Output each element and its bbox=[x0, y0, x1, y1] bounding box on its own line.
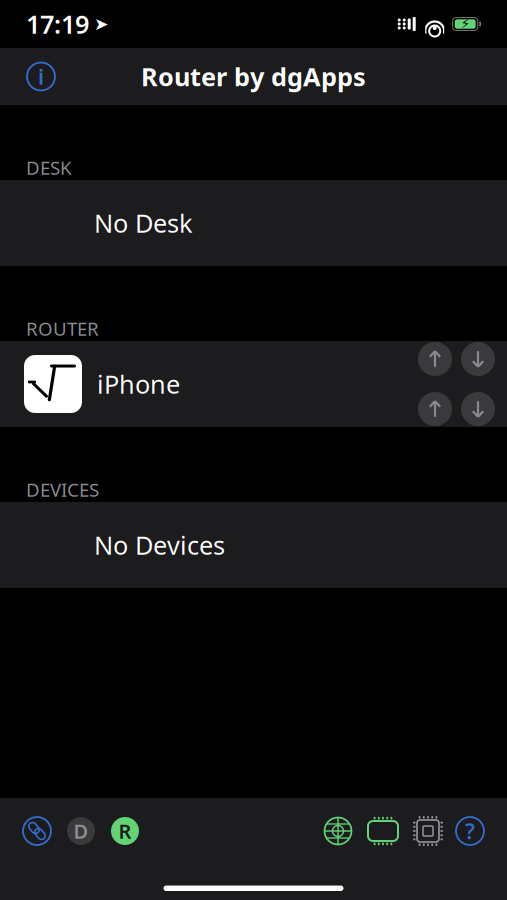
button[interactable]: Help bbox=[451, 812, 489, 850]
staticText: DESK bbox=[26, 155, 72, 180]
button[interactable]: Display bbox=[363, 812, 403, 850]
staticText: No Desk bbox=[94, 206, 193, 240]
staticText: No Devices bbox=[94, 528, 225, 562]
staticText: ➤ bbox=[94, 14, 109, 34]
staticText: ROUTER bbox=[26, 316, 99, 341]
button[interactable]: No Devices bbox=[0, 502, 507, 588]
button[interactable]: Network bbox=[319, 812, 357, 850]
staticText: ? bbox=[465, 817, 475, 845]
staticText: ⚡︎ bbox=[461, 16, 470, 31]
button[interactable]: iPhone bbox=[0, 341, 416, 427]
button[interactable]: Info bbox=[19, 54, 63, 98]
button[interactable]: Down bbox=[459, 340, 497, 378]
staticText: 17:19 bbox=[26, 7, 89, 41]
staticText: DEVICES bbox=[26, 477, 99, 502]
button[interactable]: Router bbox=[106, 812, 144, 850]
button[interactable]: Processor bbox=[409, 812, 447, 850]
staticText: iPhone bbox=[97, 367, 180, 401]
button[interactable]: Down bbox=[459, 390, 497, 428]
button[interactable]: Link bbox=[18, 812, 56, 850]
button[interactable]: Desk bbox=[62, 812, 100, 850]
staticText: i bbox=[38, 62, 44, 91]
button[interactable]: No Desk bbox=[0, 180, 507, 266]
staticText: Router by dgApps bbox=[141, 60, 366, 93]
button[interactable]: Up bbox=[416, 390, 454, 428]
button[interactable]: Up bbox=[416, 340, 454, 378]
staticText: R bbox=[118, 818, 131, 844]
staticText: D bbox=[73, 818, 88, 844]
